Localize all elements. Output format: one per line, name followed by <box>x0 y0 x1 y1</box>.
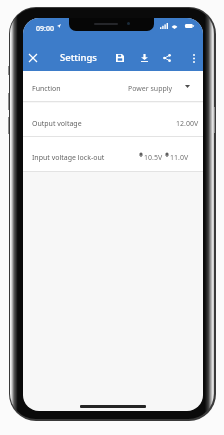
staticText: 11.0V <box>170 153 189 163</box>
button[interactable]: Save <box>110 45 130 71</box>
staticText: 10.5V <box>144 153 163 163</box>
button[interactable]: More options <box>184 45 203 71</box>
button[interactable]: Share <box>157 45 177 71</box>
staticText: Input voltage lock-out <box>32 153 105 163</box>
button[interactable]: Function <box>23 71 203 102</box>
staticText: Function <box>32 84 61 94</box>
staticText: Output voltage <box>32 119 82 129</box>
button[interactable]: Output voltage <box>23 103 203 137</box>
button[interactable]: Download <box>134 45 154 71</box>
button[interactable]: Input voltage lock-out <box>23 137 203 172</box>
staticText: Settings <box>60 51 97 64</box>
staticText: 12.00V <box>176 119 199 129</box>
button[interactable]: Close <box>23 45 43 71</box>
staticText: 09:00 <box>36 24 54 34</box>
staticText: Power supply <box>128 84 173 94</box>
